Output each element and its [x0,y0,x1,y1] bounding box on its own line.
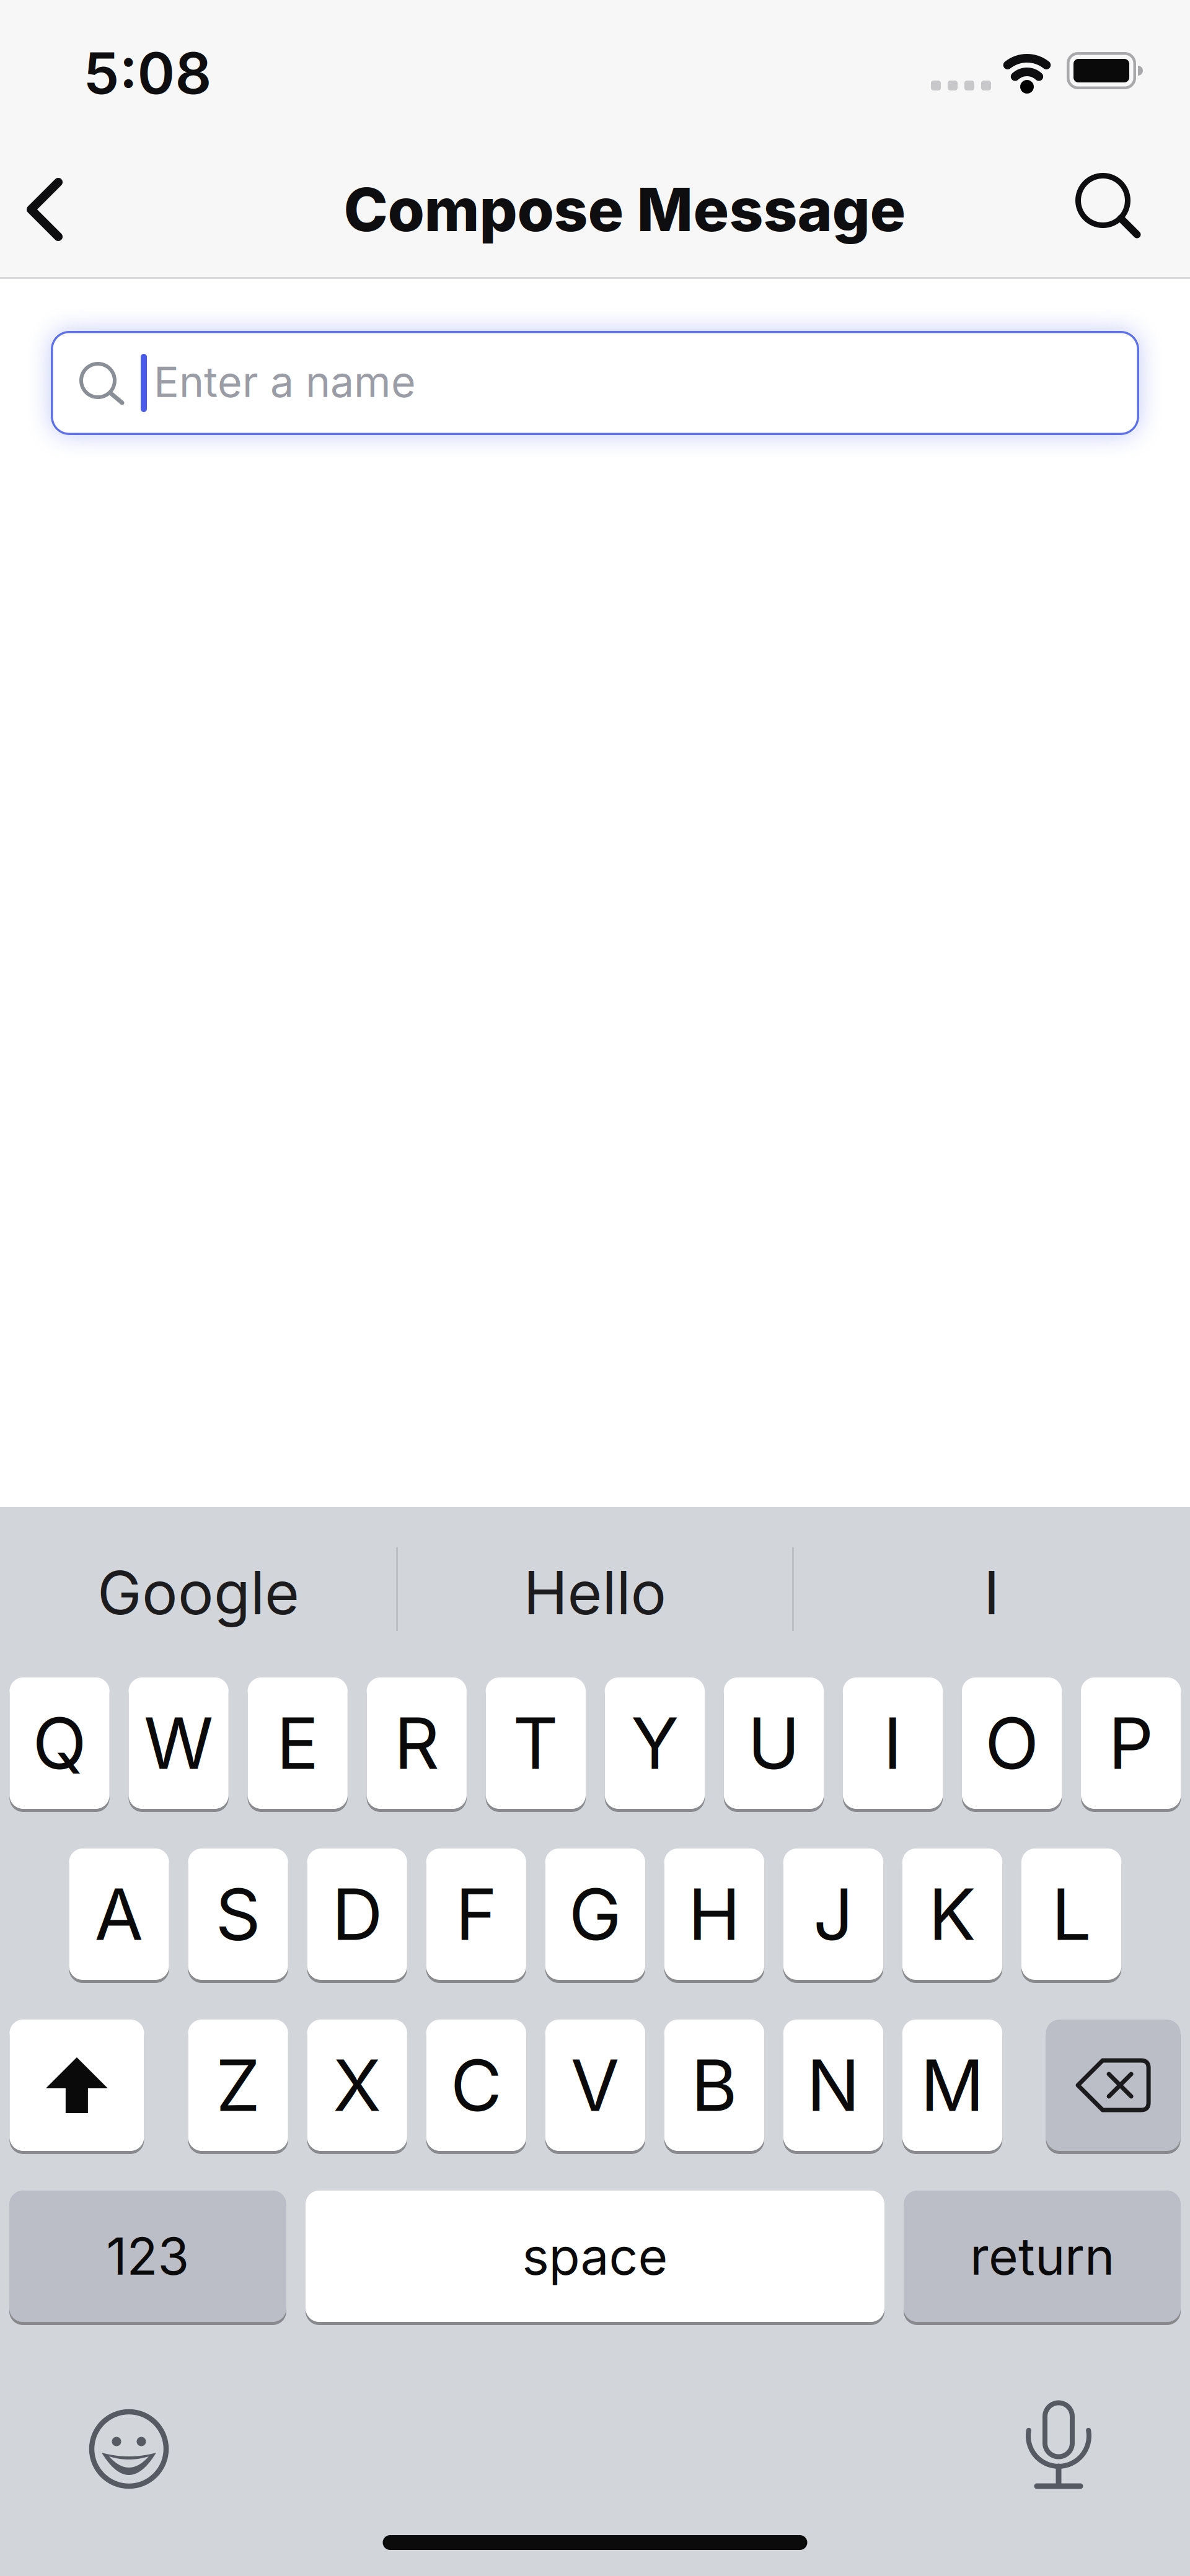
button[interactable]: X [307,2018,407,2152]
staticText: X [333,2042,381,2128]
staticText: U [747,1700,800,1786]
button[interactable]: I [843,1676,943,1810]
button[interactable]: D [307,1847,407,1981]
staticText: M [920,2042,984,2128]
button[interactable]: R [367,1676,467,1810]
staticText: C [450,2042,502,2128]
staticText: I [984,1557,1000,1629]
staticText: E [276,1700,319,1786]
staticText: N [807,2042,860,2128]
button[interactable] [86,2406,172,2492]
button[interactable]: P [1081,1676,1181,1810]
button[interactable]: S [188,1847,288,1981]
staticText: Q [33,1700,87,1786]
staticText: Compose Message [344,173,906,245]
button[interactable] [10,2018,144,2152]
staticText: 5:08 [83,39,212,108]
staticText: Google [97,1557,299,1629]
button[interactable]: O [962,1676,1062,1810]
button[interactable]: M [902,2018,1002,2152]
button[interactable]: return [904,2189,1181,2323]
button[interactable]: B [664,2018,764,2152]
staticText: F [455,1871,497,1957]
staticText: B [691,2042,737,2128]
staticText: 123 [106,2226,189,2287]
button[interactable]: Q [10,1676,110,1810]
staticText: Z [216,2042,260,2128]
staticText: R [394,1700,439,1786]
button[interactable]: E [248,1676,348,1810]
staticText: Y [631,1700,679,1786]
button[interactable]: Y [605,1676,705,1810]
button[interactable]: G [545,1847,645,1981]
staticText: T [513,1700,559,1786]
staticText: D [332,1871,383,1957]
button[interactable]: Z [188,2018,288,2152]
button[interactable] [1073,171,1144,242]
button[interactable]: space [306,2189,884,2323]
staticText: V [571,2042,620,2128]
button[interactable]: L [1021,1847,1121,1981]
staticText: I [883,1700,902,1786]
button[interactable]: W [129,1676,229,1810]
button[interactable]: N [783,2018,883,2152]
button[interactable]: H [664,1847,764,1981]
staticText: P [1108,1700,1154,1786]
button[interactable] [22,177,72,242]
button[interactable]: K [902,1847,1002,1981]
button[interactable]: I [818,1531,1165,1655]
staticText: W [144,1700,213,1786]
button[interactable]: J [783,1847,883,1981]
staticText: G [569,1871,622,1957]
button[interactable]: C [426,2018,526,2152]
button[interactable]: Hello [421,1531,769,1655]
button[interactable]: 123 [9,2189,286,2323]
button[interactable]: T [486,1676,586,1810]
staticText: K [928,1871,976,1957]
staticText: Enter a name [154,356,416,407]
button[interactable]: U [724,1676,824,1810]
button[interactable]: A [69,1847,169,1981]
button[interactable]: V [545,2018,645,2152]
staticText: S [215,1871,261,1957]
staticText: space [522,2226,668,2287]
button[interactable]: Google [25,1531,372,1655]
staticText: H [688,1871,741,1957]
staticText: A [95,1871,144,1957]
button[interactable] [1046,2018,1180,2152]
staticText: L [1052,1871,1091,1957]
staticText: O [985,1700,1039,1786]
button[interactable] [1023,2397,1097,2496]
button[interactable]: Enter a name [51,331,1139,435]
staticText: Hello [523,1557,667,1629]
staticText: return [970,2226,1114,2287]
staticText: J [813,1871,853,1957]
button[interactable]: F [426,1847,526,1981]
